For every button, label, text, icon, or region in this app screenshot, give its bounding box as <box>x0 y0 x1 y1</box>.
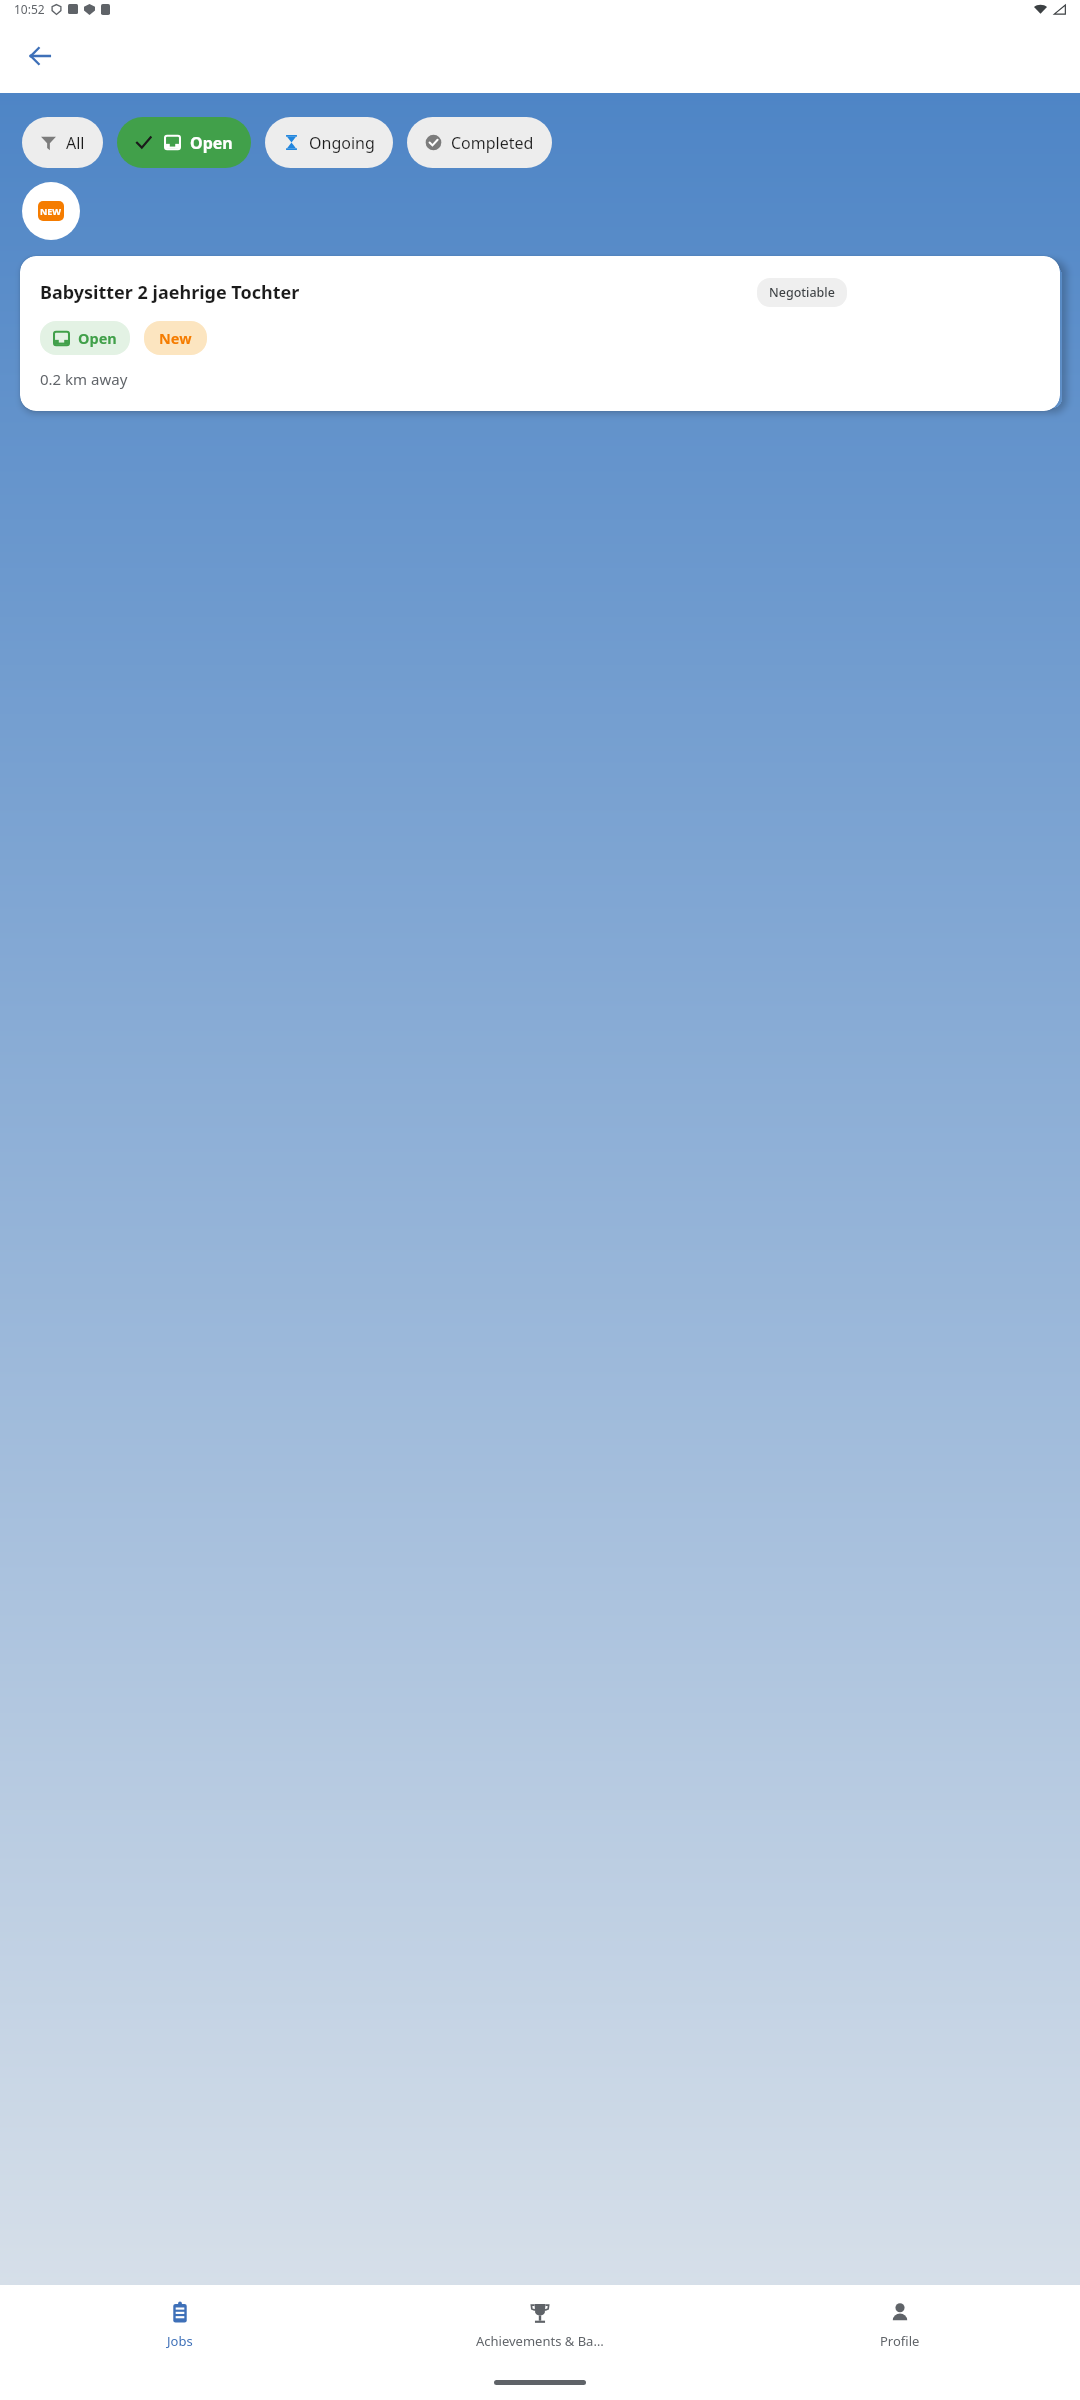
staticText: New <box>159 328 192 348</box>
staticText: NEW <box>40 205 62 217</box>
button[interactable]: All <box>22 117 103 168</box>
staticText: Profile <box>880 2332 920 2350</box>
staticText: Jobs <box>167 2332 193 2350</box>
staticText: Negotiable <box>769 284 835 301</box>
staticText: All <box>66 132 85 154</box>
button[interactable]: Babysitter 2 jaehrige Tochter <box>20 256 1060 411</box>
button[interactable]: Jobs <box>0 2285 360 2365</box>
button[interactable]: Profile <box>720 2285 1080 2365</box>
button[interactable]: Back <box>16 32 64 80</box>
button[interactable]: Open <box>117 117 251 168</box>
button[interactable]: Achievements & Ba… <box>360 2285 720 2365</box>
button[interactable]: New jobs <box>22 182 80 240</box>
staticText: Completed <box>451 132 534 154</box>
staticText: Open <box>78 328 117 348</box>
staticText: Open <box>190 132 233 154</box>
staticText: 10:52 <box>14 1 45 17</box>
staticText: Achievements & Ba… <box>476 2332 604 2350</box>
button[interactable]: Ongoing <box>265 117 393 168</box>
staticText: Ongoing <box>309 132 375 154</box>
button[interactable]: Completed <box>407 117 552 168</box>
staticText: 0.2 km away <box>40 369 128 389</box>
staticText: Babysitter 2 jaehrige Tochter <box>40 280 300 305</box>
